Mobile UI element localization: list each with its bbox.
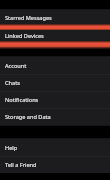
staticText: Tell a Friend: [5, 161, 37, 169]
button[interactable]: Notifications: [0, 91, 110, 108]
button[interactable]: Chats: [0, 74, 110, 91]
staticText: Notifications: [5, 96, 39, 104]
staticText: Account: [5, 62, 27, 70]
staticText: Linked Devices: [5, 32, 44, 40]
button[interactable]: Tell a Friend: [0, 156, 110, 173]
staticText: Chats: [5, 79, 20, 87]
staticText: Help: [5, 144, 18, 152]
staticText: Starred Messages: [5, 14, 52, 22]
button[interactable]: Starred Messages: [0, 10, 110, 24]
button[interactable]: Help: [0, 139, 110, 156]
button[interactable]: Linked Devices: [0, 30, 110, 41]
staticText: Storage and Data: [5, 113, 51, 121]
button[interactable]: Account: [0, 57, 110, 74]
button[interactable]: Storage and Data: [0, 108, 110, 125]
